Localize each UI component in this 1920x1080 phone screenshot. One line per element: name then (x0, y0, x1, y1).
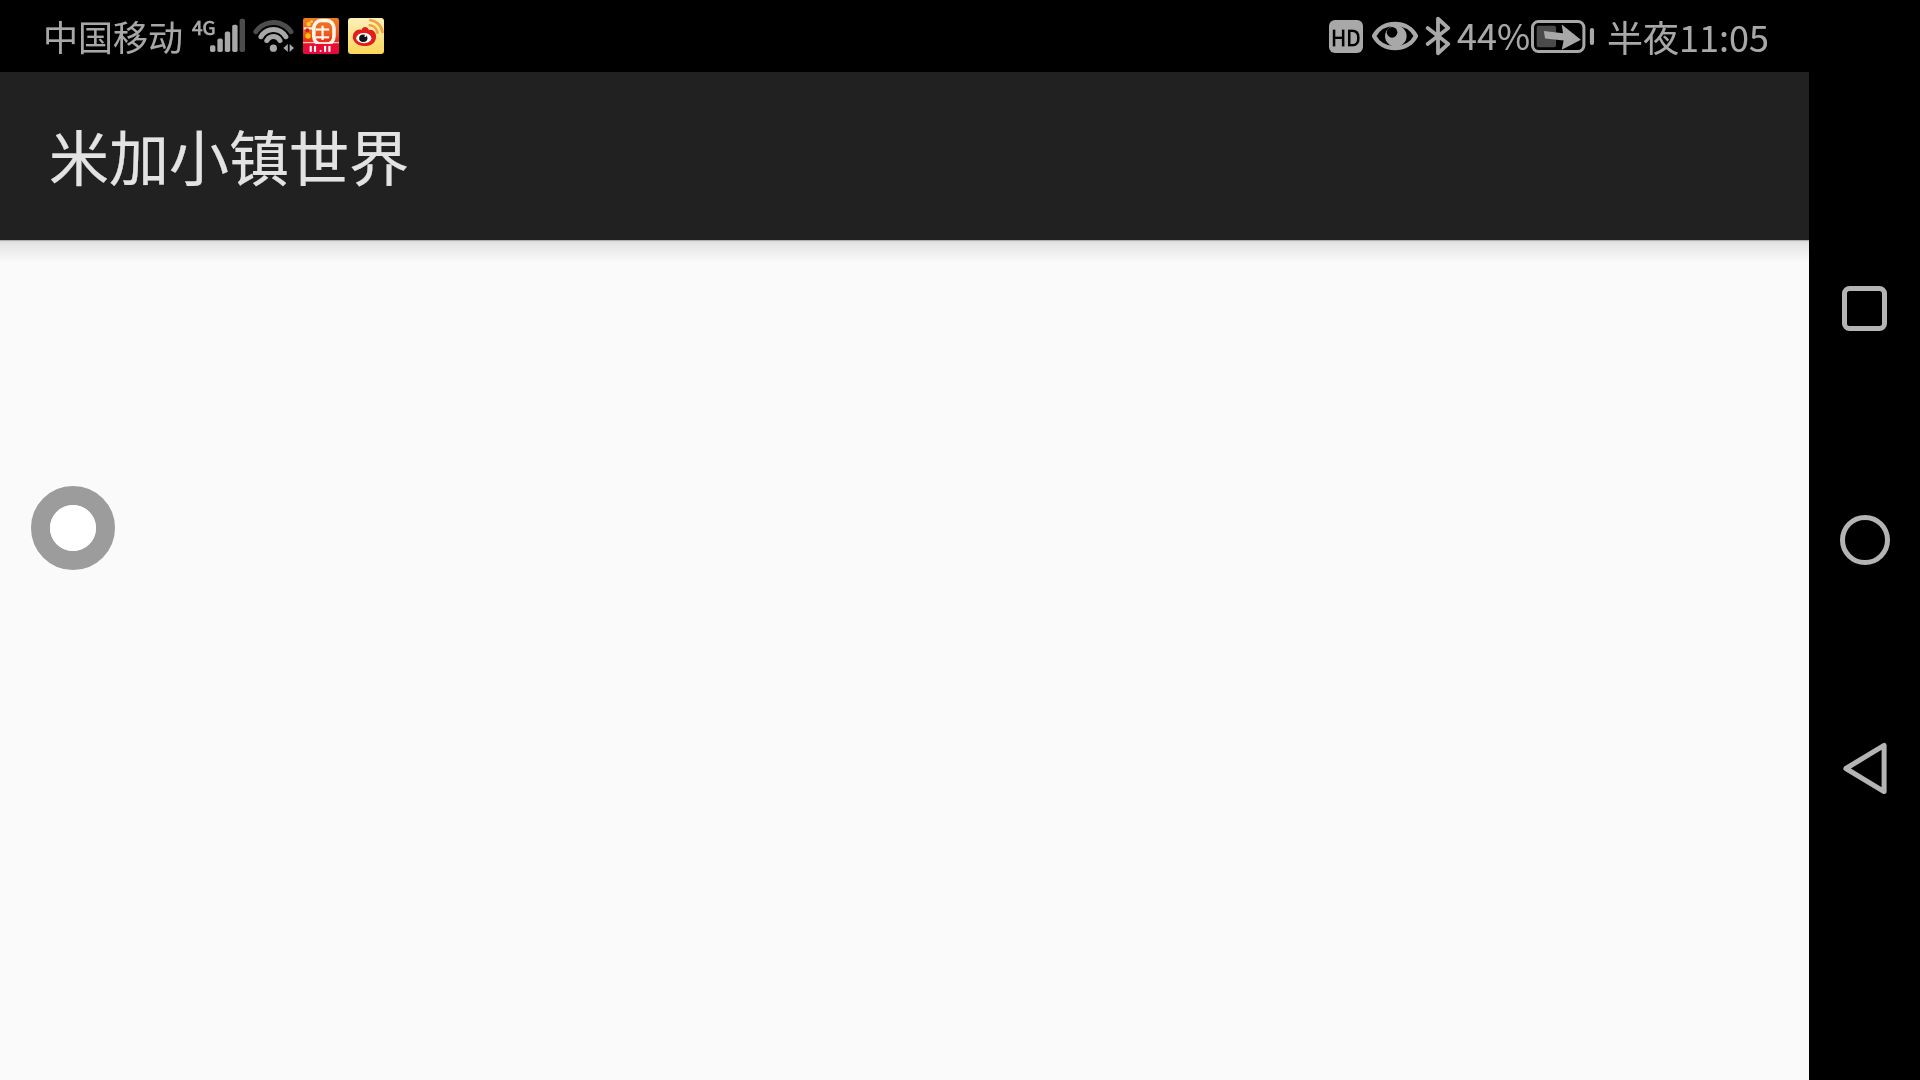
button[interactable]: Back (1819, 723, 1910, 814)
button[interactable]: Home (1819, 494, 1910, 585)
staticText: 半夜11:05 (1607, 10, 1769, 62)
staticText: 44% (1457, 8, 1531, 60)
button[interactable]: Recent apps (1819, 263, 1910, 354)
staticText: 4G (192, 13, 216, 41)
staticText: 米加小镇世界 (49, 111, 409, 198)
staticText: 中国移动 (43, 10, 184, 61)
staticText: HD (1331, 22, 1361, 52)
